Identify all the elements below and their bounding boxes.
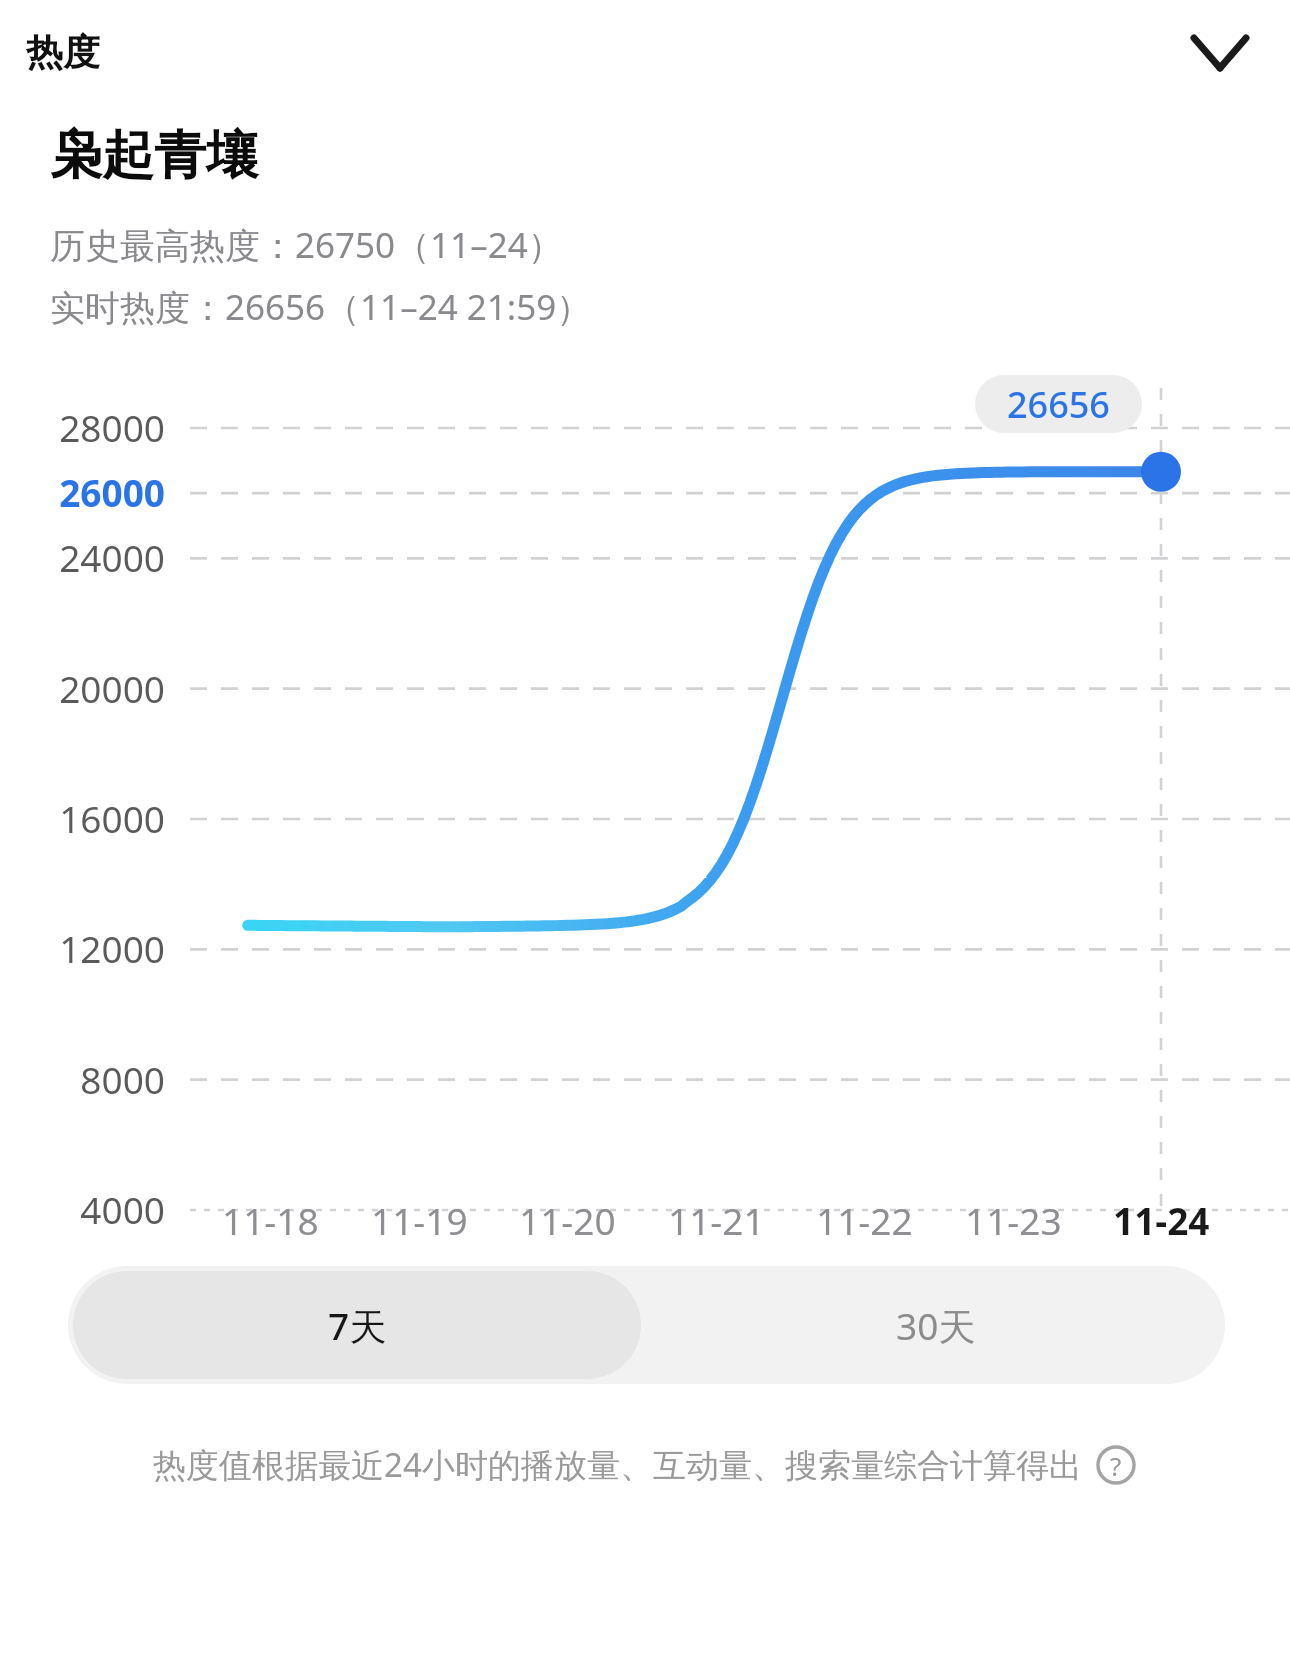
- button[interactable]: Help: [1094, 1443, 1138, 1487]
- staticText: 11-24: [1113, 1195, 1210, 1245]
- staticText: 20000: [59, 663, 165, 713]
- staticText: 7天: [328, 1300, 387, 1351]
- staticText: 11-22: [816, 1195, 913, 1245]
- staticText: 4000: [80, 1184, 165, 1234]
- staticText: 8000: [80, 1054, 165, 1104]
- staticText: 28000: [59, 402, 165, 452]
- staticText: 11-18: [222, 1195, 319, 1245]
- staticText: 26656: [1007, 380, 1110, 429]
- staticText: 实时热度：26656（11–24 21:59）: [50, 283, 592, 331]
- staticText: 11-21: [668, 1195, 765, 1245]
- staticText: 12000: [59, 923, 165, 973]
- staticText: 热度: [26, 29, 100, 76]
- staticText: 枭起青壤: [50, 123, 258, 189]
- staticText: 24000: [59, 532, 165, 582]
- button[interactable]: Collapse: [1172, 5, 1268, 101]
- button[interactable]: 7天: [73, 1271, 641, 1379]
- staticText: 30天: [896, 1300, 976, 1351]
- staticText: 热度值根据最近24小时的播放量、互动量、搜索量综合计算得出: [153, 1442, 1082, 1487]
- staticText: 11-20: [519, 1195, 616, 1245]
- staticText: 16000: [59, 793, 165, 843]
- staticText: 11-23: [965, 1195, 1062, 1245]
- staticText: 26000: [59, 467, 165, 517]
- button[interactable]: 30天: [646, 1266, 1225, 1384]
- staticText: 11-19: [371, 1195, 468, 1245]
- staticText: 历史最高热度：26750（11–24）: [50, 221, 563, 269]
- staticText: ?: [1110, 1448, 1122, 1483]
